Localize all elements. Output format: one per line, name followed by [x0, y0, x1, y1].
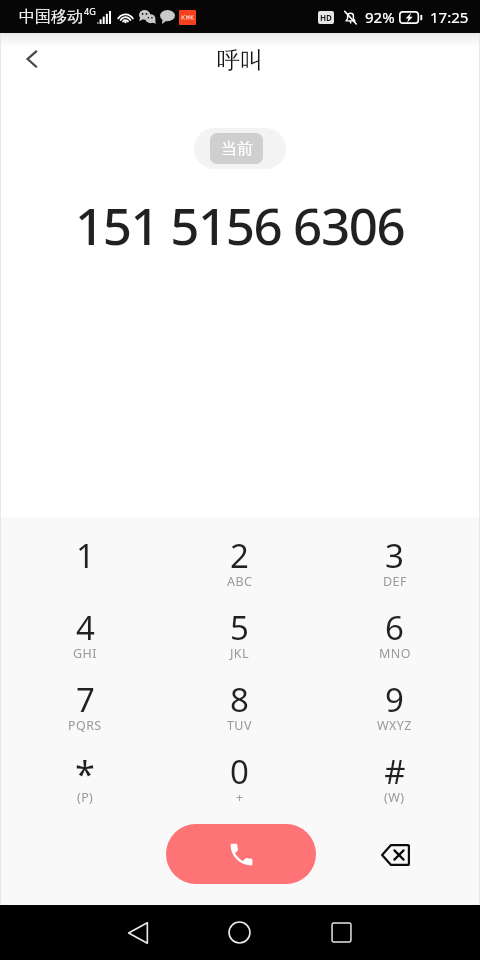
button[interactable]: Home — [207, 905, 271, 960]
staticText: 中国移动 — [19, 7, 83, 27]
staticText: (P) — [77, 789, 94, 806]
staticText: 4G — [84, 5, 96, 17]
staticText: # — [384, 749, 406, 794]
button[interactable]: 4 — [8, 593, 162, 664]
button[interactable]: Backspace — [365, 825, 425, 885]
button[interactable]: Recents — [309, 905, 373, 960]
button[interactable]: Back — [8, 35, 56, 83]
button[interactable]: Back — [105, 905, 169, 960]
button[interactable]: 1 — [8, 521, 162, 592]
staticText: HD — [320, 12, 332, 23]
button[interactable]: 8 — [162, 665, 317, 736]
staticText: TUV — [227, 717, 252, 734]
staticText: 2 — [230, 533, 249, 578]
staticText: MNO — [379, 645, 411, 662]
staticText: 4 — [76, 605, 95, 650]
staticText: 3 — [385, 533, 404, 578]
button[interactable]: 6 — [317, 593, 472, 664]
button[interactable]: # — [317, 737, 472, 808]
button[interactable]: 5 — [162, 593, 317, 664]
staticText: PQRS — [68, 717, 102, 734]
staticText: 呼叫 — [217, 46, 263, 75]
staticText: * — [75, 749, 95, 798]
staticText: DEF — [383, 573, 407, 590]
staticText: 17:25 — [430, 7, 469, 27]
staticText: 92% — [365, 7, 395, 27]
button[interactable]: 9 — [317, 665, 472, 736]
button[interactable]: 3 — [317, 521, 472, 592]
staticText: ABC — [227, 573, 253, 590]
button[interactable]: Current SIM card — [194, 128, 286, 169]
staticText: (W) — [384, 789, 405, 806]
staticText: 1 — [76, 533, 95, 578]
button[interactable]: 7 — [8, 665, 162, 736]
staticText: 9 — [385, 677, 404, 722]
button[interactable]: Call — [166, 824, 316, 884]
staticText: 0 — [230, 749, 249, 794]
staticText: 7 — [76, 677, 95, 722]
button[interactable]: 2 — [162, 521, 317, 592]
staticText: + — [236, 789, 244, 806]
button[interactable]: * — [8, 737, 162, 808]
staticText: JKL — [230, 645, 249, 662]
staticText: 8 — [230, 677, 249, 722]
staticText: 当前 — [221, 139, 253, 159]
staticText: GHI — [73, 645, 97, 662]
staticText: 151 5156 6306 — [75, 190, 405, 259]
button[interactable]: 0 — [162, 737, 317, 808]
staticText: 5 — [230, 605, 249, 650]
staticText: 6 — [385, 605, 404, 650]
staticText: WXYZ — [377, 717, 412, 734]
